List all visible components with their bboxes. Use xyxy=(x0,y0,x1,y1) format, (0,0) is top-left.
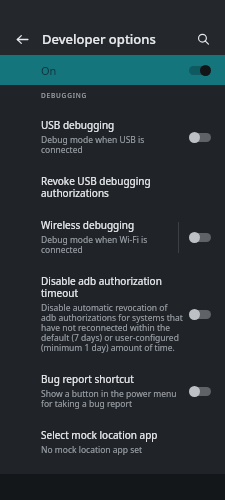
staticText: Debug mode when Wi-Fi is connected xyxy=(41,234,172,256)
staticText: Show a button in the power menu for taki… xyxy=(41,388,183,410)
staticText: Revoke USB debugging authorizations xyxy=(41,174,209,200)
staticText: Wireless debugging xyxy=(41,218,135,232)
staticText: Select mock location app xyxy=(41,428,158,442)
staticText: Debug mode when USB is connected xyxy=(41,134,183,156)
staticText: Bug report shortcut xyxy=(41,372,134,386)
button[interactable]: On xyxy=(0,55,225,85)
button[interactable]: Toggle xyxy=(189,132,211,143)
button[interactable]: Select mock location app xyxy=(0,419,225,465)
button[interactable]: Revoke USB debugging authorizations xyxy=(0,165,225,209)
staticText: Disable adb authorization timeout xyxy=(41,274,183,300)
button[interactable]: Search xyxy=(189,25,217,53)
button[interactable]: Disable adb authorization timeout xyxy=(0,265,225,363)
button[interactable]: Back xyxy=(8,25,36,53)
staticText: No mock location app set xyxy=(41,444,143,456)
staticText: USB debugging xyxy=(41,118,115,132)
button[interactable]: Wireless debugging xyxy=(0,209,225,265)
button[interactable]: Toggle xyxy=(189,386,211,397)
button[interactable]: Toggle xyxy=(189,232,211,243)
button[interactable]: USB debugging xyxy=(0,109,225,165)
button[interactable]: Toggle developer options xyxy=(189,65,211,76)
staticText: Developer options xyxy=(42,30,156,48)
staticText: Disable automatic revocation of adb auth… xyxy=(41,302,183,354)
button[interactable]: Bug report shortcut xyxy=(0,363,225,419)
staticText: DEBUGGING xyxy=(41,91,88,100)
staticText: On xyxy=(41,63,57,78)
button[interactable]: Toggle xyxy=(189,309,211,320)
